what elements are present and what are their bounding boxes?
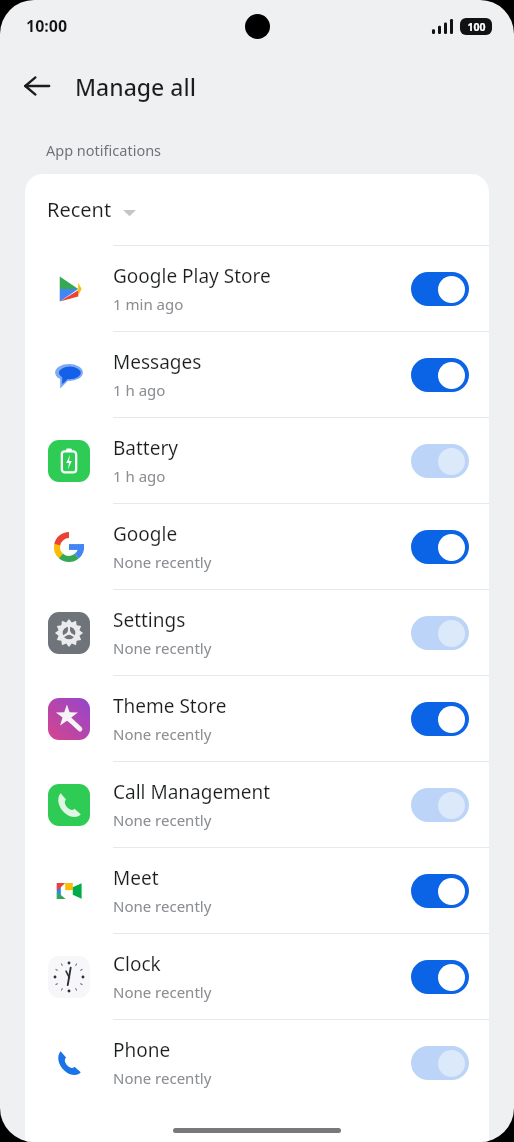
staticText: Clock [113, 951, 161, 977]
button[interactable]: Notifications on [411, 874, 469, 908]
button[interactable]: Google Play Store [25, 246, 489, 331]
staticText: Meet [113, 865, 159, 891]
staticText: None recently [113, 896, 212, 916]
staticText: Google Play Store [113, 263, 271, 289]
staticText: Recent [47, 196, 112, 223]
staticText: Google [113, 521, 178, 547]
staticText: Phone [113, 1037, 171, 1063]
staticText: None recently [113, 810, 212, 830]
staticText: App notifications [46, 140, 162, 160]
staticText: None recently [113, 638, 212, 658]
button[interactable]: Notifications on [411, 702, 469, 736]
button[interactable]: Notifications off [411, 1046, 469, 1080]
staticText: None recently [113, 1068, 212, 1088]
staticText: Manage all [75, 71, 196, 102]
button[interactable]: Battery [25, 418, 489, 503]
button[interactable]: Messages [25, 332, 489, 417]
button[interactable]: Notifications off [411, 444, 469, 478]
staticText: 10:00 [26, 15, 68, 37]
button[interactable]: Theme Store [25, 676, 489, 761]
staticText: Theme Store [113, 693, 227, 719]
button[interactable]: Back [12, 61, 62, 111]
staticText: Settings [113, 607, 186, 633]
staticText: None recently [113, 552, 212, 572]
button[interactable]: Settings [25, 590, 489, 675]
button[interactable]: Notifications on [411, 358, 469, 392]
button[interactable]: Recent [25, 174, 489, 245]
staticText: Call Management [113, 779, 271, 805]
staticText: 100 [467, 20, 486, 34]
button[interactable]: Clock [25, 934, 489, 1019]
button[interactable]: Notifications on [411, 272, 469, 306]
staticText: Battery [113, 435, 178, 461]
button[interactable]: Notifications on [411, 960, 469, 994]
staticText: 1 h ago [113, 466, 166, 486]
button[interactable]: Notifications off [411, 616, 469, 650]
staticText: None recently [113, 982, 212, 1002]
button[interactable]: Phone [25, 1020, 489, 1105]
staticText: Messages [113, 349, 202, 375]
staticText: None recently [113, 724, 212, 744]
button[interactable]: Google [25, 504, 489, 589]
button[interactable]: Meet [25, 848, 489, 933]
button[interactable]: Call Management [25, 762, 489, 847]
button[interactable]: Notifications off [411, 788, 469, 822]
button[interactable]: Notifications on [411, 530, 469, 564]
staticText: 1 min ago [113, 294, 184, 314]
staticText: 1 h ago [113, 380, 166, 400]
